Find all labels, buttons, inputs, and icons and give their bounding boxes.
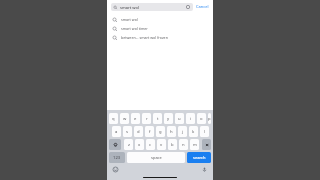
staticText: smart wol (121, 17, 138, 22)
button[interactable]: Clear text (185, 4, 191, 10)
button[interactable]: o (197, 113, 206, 124)
button[interactable]: a (112, 126, 121, 137)
button[interactable]: i (186, 113, 195, 124)
button[interactable]: smart wol (111, 3, 193, 11)
staticText: Cancel (196, 4, 209, 9)
button[interactable]: k (189, 126, 198, 137)
button[interactable]: s (123, 126, 132, 137)
staticText: j (182, 129, 184, 135)
staticText: i (190, 116, 192, 122)
staticText: g (159, 129, 162, 135)
button[interactable]: smart wol timer (107, 24, 213, 33)
button[interactable]: Backspace (202, 139, 211, 150)
button[interactable]: z (124, 139, 133, 150)
button[interactable]: Voice input (201, 166, 208, 173)
button[interactable]: n (179, 139, 188, 150)
button[interactable]: m (190, 139, 199, 150)
button[interactable]: c (146, 139, 155, 150)
staticText: e (134, 116, 137, 122)
button[interactable]: search (187, 152, 211, 163)
button[interactable]: y (164, 113, 173, 124)
staticText: z (128, 142, 130, 148)
button[interactable]: Emoji (112, 166, 119, 173)
staticText: u (178, 116, 181, 122)
button[interactable]: space (127, 152, 185, 163)
button[interactable]: p (208, 113, 211, 124)
button[interactable]: t (153, 113, 162, 124)
staticText: r (146, 116, 148, 122)
staticText: smart wol (120, 5, 140, 10)
staticText: c (149, 142, 152, 148)
staticText: p (208, 116, 211, 122)
staticText: d (137, 129, 140, 135)
staticText: l (204, 129, 206, 135)
staticText: o (200, 116, 203, 122)
button[interactable]: l (200, 126, 209, 137)
staticText: smart wol timer (121, 26, 148, 31)
button[interactable]: u (175, 113, 184, 124)
button[interactable]: b (168, 139, 177, 150)
staticText: f (149, 129, 151, 135)
staticText: space (151, 155, 162, 160)
staticText: between... smart wol frozen (121, 35, 168, 40)
button[interactable]: e (131, 113, 140, 124)
button[interactable]: x (135, 139, 144, 150)
button[interactable]: Cancel (196, 4, 209, 9)
staticText: k (192, 129, 195, 135)
staticText: x (138, 142, 141, 148)
staticText: t (157, 116, 159, 122)
button[interactable]: Shift (109, 139, 121, 150)
button[interactable]: q (109, 113, 118, 124)
button[interactable]: d (134, 126, 143, 137)
staticText: v (160, 142, 163, 148)
button[interactable]: r (142, 113, 151, 124)
staticText: y (167, 116, 170, 122)
staticText: m (193, 142, 197, 148)
button[interactable]: between... smart wol frozen (107, 33, 213, 42)
button[interactable]: w (120, 113, 129, 124)
button[interactable]: g (156, 126, 165, 137)
staticText: s (126, 129, 129, 135)
button[interactable]: h (167, 126, 176, 137)
staticText: 123 (113, 155, 121, 161)
button[interactable]: 123 (109, 152, 125, 163)
button[interactable]: v (157, 139, 166, 150)
staticText: n (182, 142, 185, 148)
staticText: b (171, 142, 174, 148)
staticText: search (193, 155, 206, 160)
button[interactable]: j (178, 126, 187, 137)
staticText: h (170, 129, 173, 135)
staticText: a (115, 129, 118, 135)
button[interactable]: f (145, 126, 154, 137)
staticText: q (112, 116, 115, 122)
staticText: w (123, 116, 127, 122)
button[interactable]: smart wol (107, 15, 213, 24)
